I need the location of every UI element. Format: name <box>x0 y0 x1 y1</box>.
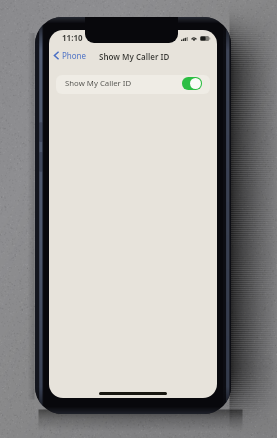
staticText: Phone <box>62 50 87 61</box>
staticText: Show My Caller ID <box>99 51 170 62</box>
button[interactable]: Show My Caller ID <box>56 75 210 94</box>
staticText: 11:10 <box>62 32 83 43</box>
staticText: Show My Caller ID <box>65 78 132 89</box>
button[interactable]: Show My Caller ID toggle, on <box>182 77 202 90</box>
button[interactable]: Phone <box>49 46 92 65</box>
